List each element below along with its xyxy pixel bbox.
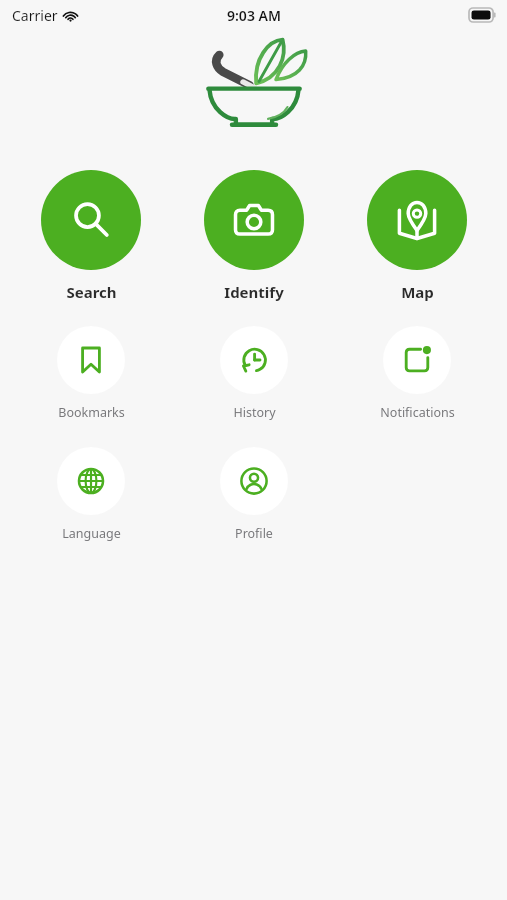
button[interactable]: Bookmarks: [41, 326, 141, 421]
staticText: Map: [401, 282, 434, 302]
staticText: Search: [66, 282, 117, 302]
button[interactable]: Identify: [204, 170, 304, 302]
staticText: History: [233, 404, 276, 421]
staticText: Carrier: [12, 6, 58, 25]
button[interactable]: History: [204, 326, 304, 421]
button[interactable]: Search: [41, 170, 141, 302]
staticText: Profile: [235, 525, 273, 542]
staticText: 9:03 AM: [227, 6, 281, 25]
staticText: Language: [62, 525, 121, 542]
button[interactable]: Map: [367, 170, 467, 302]
staticText: Notifications: [380, 404, 455, 421]
button[interactable]: Profile: [204, 447, 304, 542]
button[interactable]: Language: [41, 447, 141, 542]
button[interactable]: Notifications: [367, 326, 467, 421]
staticText: Bookmarks: [58, 404, 125, 421]
staticText: Identify: [224, 282, 284, 302]
